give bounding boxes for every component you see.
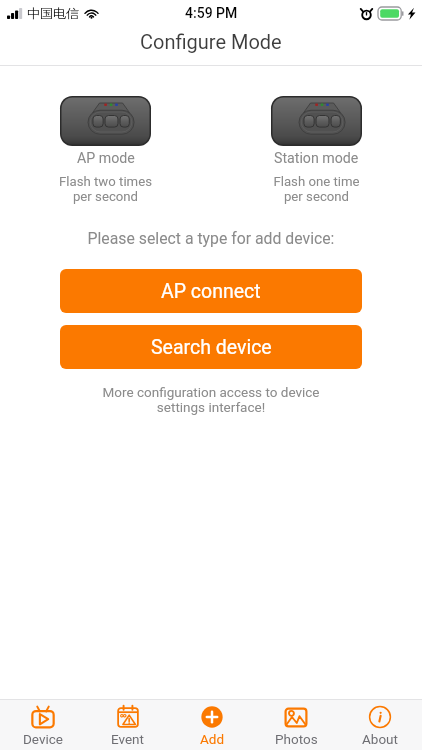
button[interactable]: Device xyxy=(0,700,85,750)
staticText: Event xyxy=(111,731,144,747)
button[interactable]: Add xyxy=(170,700,254,750)
staticText: Search device xyxy=(151,336,272,359)
button[interactable]: AP connect xyxy=(60,269,362,313)
staticText: Photos xyxy=(275,731,318,747)
staticText: Station mode xyxy=(274,150,359,167)
button[interactable]: Event xyxy=(85,700,170,750)
staticText: Flash two times per second xyxy=(59,174,152,204)
staticText: About xyxy=(362,731,398,747)
button[interactable]: About xyxy=(338,700,422,750)
button[interactable]: Search device xyxy=(60,325,362,369)
staticText: AP mode xyxy=(77,150,135,167)
staticText: Add xyxy=(200,731,225,747)
staticText: Device xyxy=(23,731,63,747)
staticText: 中国电信 xyxy=(27,5,79,21)
staticText: 4:59 PM xyxy=(185,5,238,21)
staticText: Flash one time per second xyxy=(273,174,360,204)
staticText: Configure Mode xyxy=(140,30,282,53)
staticText: Please select a type for add device: xyxy=(0,229,422,248)
staticText: More configuration access to device sett… xyxy=(0,384,422,415)
button[interactable]: Photos xyxy=(254,700,338,750)
staticText: AP connect xyxy=(161,280,261,303)
